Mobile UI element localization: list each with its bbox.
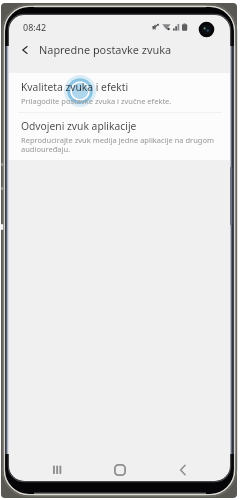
button[interactable]: Kvaliteta zvuka i efekti: [9, 73, 230, 112]
button[interactable]: Odvojeni zvuk aplikacije: [9, 113, 230, 160]
button[interactable]: Back: [169, 456, 197, 481]
button[interactable]: Home: [106, 456, 134, 481]
staticText: Odvojeni zvuk aplikacije: [21, 119, 137, 133]
staticText: 08:42: [23, 21, 47, 33]
staticText: Kvaliteta zvuka i efekti: [21, 80, 129, 94]
button[interactable]: Recent apps: [43, 456, 71, 481]
button[interactable]: Back: [13, 38, 37, 62]
staticText: Napredne postavke zvuka: [39, 42, 172, 57]
staticText: Prilagodite postavke zvuka i zvučne efek…: [21, 96, 172, 106]
staticText: Reproducirajte zvuk medija jedne aplikac…: [21, 135, 226, 155]
